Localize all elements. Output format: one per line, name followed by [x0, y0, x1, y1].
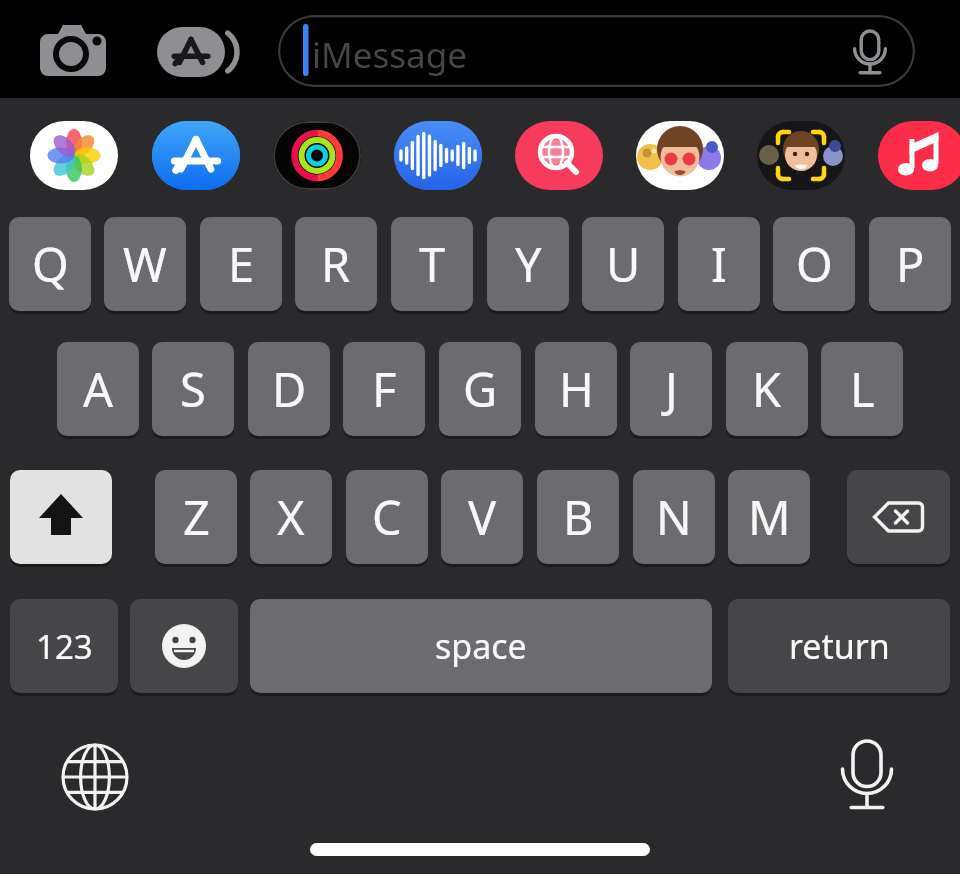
button[interactable]: H	[535, 342, 617, 436]
button[interactable]: E	[200, 217, 282, 311]
staticText: return	[789, 623, 890, 669]
button[interactable]: M	[728, 470, 810, 564]
button[interactable]: P	[869, 217, 951, 311]
staticText: A	[83, 357, 114, 421]
button[interactable]	[515, 121, 603, 190]
button[interactable]	[757, 121, 845, 190]
staticText: Z	[183, 485, 210, 549]
button[interactable]: A	[57, 342, 139, 436]
staticText: iMessage	[312, 31, 467, 79]
button[interactable]: U	[582, 217, 664, 311]
button[interactable]: V	[441, 470, 523, 564]
button[interactable]: X	[250, 470, 332, 564]
button[interactable]: Q	[9, 217, 91, 311]
staticText: Q	[32, 232, 69, 296]
button[interactable]: N	[633, 470, 715, 564]
staticText: G	[463, 357, 498, 421]
staticText: U	[606, 232, 641, 296]
staticText: N	[656, 485, 692, 549]
staticText: T	[419, 232, 446, 296]
button[interactable]	[822, 732, 912, 822]
button[interactable]	[30, 20, 120, 86]
button[interactable]	[878, 121, 960, 190]
button[interactable]	[636, 121, 724, 190]
staticText: O	[796, 232, 833, 296]
button[interactable]: Y	[487, 217, 569, 311]
button[interactable]: G	[439, 342, 521, 436]
button[interactable]: space	[250, 599, 712, 693]
staticText: Y	[515, 232, 542, 296]
button[interactable]: L	[821, 342, 903, 436]
button[interactable]: D	[248, 342, 330, 436]
button[interactable]: iMessage	[278, 15, 915, 87]
staticText: K	[752, 357, 782, 421]
staticText: H	[559, 357, 594, 421]
button[interactable]	[10, 470, 112, 564]
staticText: B	[563, 485, 594, 549]
staticText: P	[896, 232, 925, 296]
staticText: C	[372, 485, 402, 549]
staticText: D	[272, 357, 307, 421]
button[interactable]	[147, 17, 247, 87]
button[interactable]: O	[773, 217, 855, 311]
button[interactable]	[847, 470, 950, 564]
button[interactable]: K	[726, 342, 808, 436]
button[interactable]: S	[152, 342, 234, 436]
button[interactable]: return	[728, 599, 950, 693]
staticText: X	[277, 485, 305, 549]
staticText: space	[435, 623, 527, 669]
staticText: R	[321, 232, 351, 296]
button[interactable]: 123	[10, 599, 118, 693]
button[interactable]: R	[295, 217, 377, 311]
staticText: F	[372, 357, 397, 421]
staticText: E	[228, 232, 255, 296]
button[interactable]: J	[630, 342, 712, 436]
button[interactable]: Z	[155, 470, 237, 564]
button[interactable]	[30, 121, 118, 190]
staticText: L	[850, 357, 875, 421]
button[interactable]: B	[537, 470, 619, 564]
staticText: I	[711, 232, 727, 296]
button[interactable]	[130, 599, 238, 693]
button[interactable]: F	[343, 342, 425, 436]
button[interactable]	[152, 121, 240, 190]
button[interactable]: T	[391, 217, 473, 311]
button[interactable]	[394, 121, 482, 190]
button[interactable]: C	[346, 470, 428, 564]
staticText: M	[748, 485, 791, 549]
staticText: S	[180, 357, 206, 421]
staticText: J	[665, 357, 678, 421]
staticText: V	[468, 485, 497, 549]
staticText: W	[123, 232, 167, 296]
button[interactable]: I	[678, 217, 760, 311]
button[interactable]: W	[104, 217, 186, 311]
staticText: 123	[36, 624, 93, 669]
button[interactable]	[50, 732, 140, 822]
button[interactable]	[273, 121, 361, 190]
